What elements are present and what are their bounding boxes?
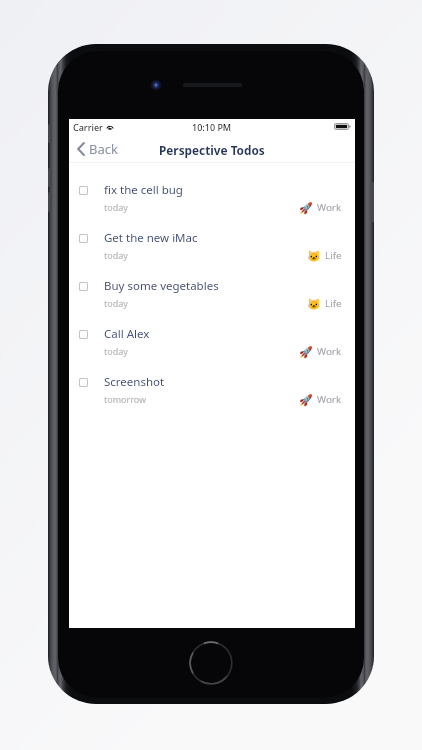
staticText: today [104,249,128,261]
staticText: Buy some vegetables [104,278,219,294]
staticText: Work [317,201,342,214]
staticText: Work [317,345,342,358]
staticText: Life [325,297,342,310]
staticText: today [104,201,128,213]
staticText: 🚀 [299,202,313,215]
staticText: 🐱 [307,298,321,311]
button[interactable]: fix the cell bug [69,166,355,214]
staticText: Life [325,249,342,262]
button[interactable]: Get the new iMac [69,214,355,262]
staticText: fix the cell bug [104,182,183,198]
staticText: Back [89,140,118,158]
staticText: today [104,297,128,309]
button[interactable]: Call Alex [69,310,355,358]
staticText: Carrier [73,121,103,133]
staticText: 🚀 [299,346,313,359]
staticText: 10:10 PM [192,121,232,133]
button[interactable]: Buy some vegetables [69,262,355,310]
button[interactable]: Back [69,136,124,162]
staticText: Perspective Todos [159,142,265,158]
staticText: today [104,345,128,357]
staticText: tomorrow [104,393,147,405]
staticText: 🚀 [299,394,313,407]
staticText: Screenshot [104,374,165,390]
staticText: Work [317,393,342,406]
staticText: Get the new iMac [104,230,198,246]
button[interactable]: Screenshot [69,358,355,406]
staticText: 🐱 [307,250,321,263]
staticText: Call Alex [104,326,150,342]
